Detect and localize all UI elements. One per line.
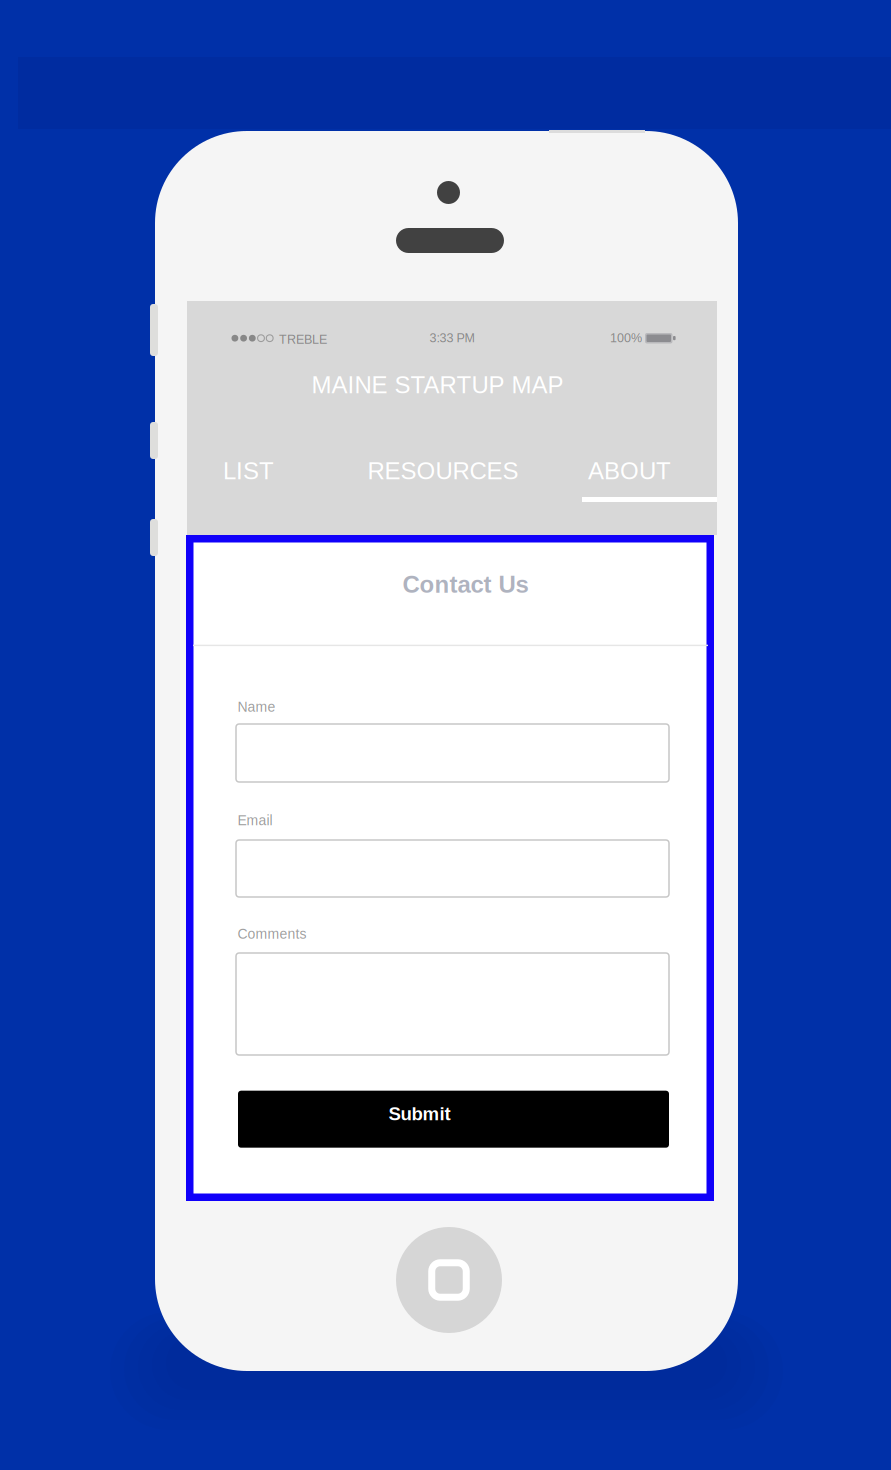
button[interactable]: RESOURCES [360,440,526,502]
staticText: MAINE STARTUP MAP [311,372,563,398]
staticText: 100% [610,331,642,345]
button[interactable]: Home [396,1227,502,1333]
staticText: Contact Us [402,571,528,598]
staticText: LIST [223,458,274,484]
button[interactable]: Submit [238,1091,669,1148]
staticText: 3:33 PM [429,331,474,345]
staticText: Submit [388,1103,450,1124]
button[interactable]: ABOUT [582,440,677,502]
staticText: Comments [237,926,306,942]
staticText: TREBLE [279,332,327,346]
button[interactable]: LIST [187,440,310,502]
staticText: ABOUT [588,458,671,484]
staticText: Email [237,813,272,828]
staticText: Name [237,699,275,715]
staticText: RESOURCES [367,458,518,484]
